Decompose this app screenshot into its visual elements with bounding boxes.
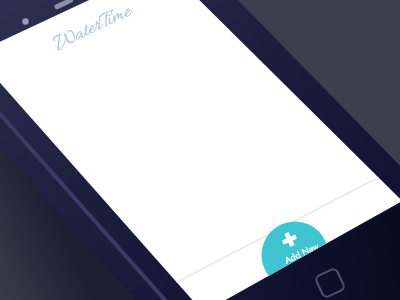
button[interactable]: Add New: [0, 0, 400, 300]
